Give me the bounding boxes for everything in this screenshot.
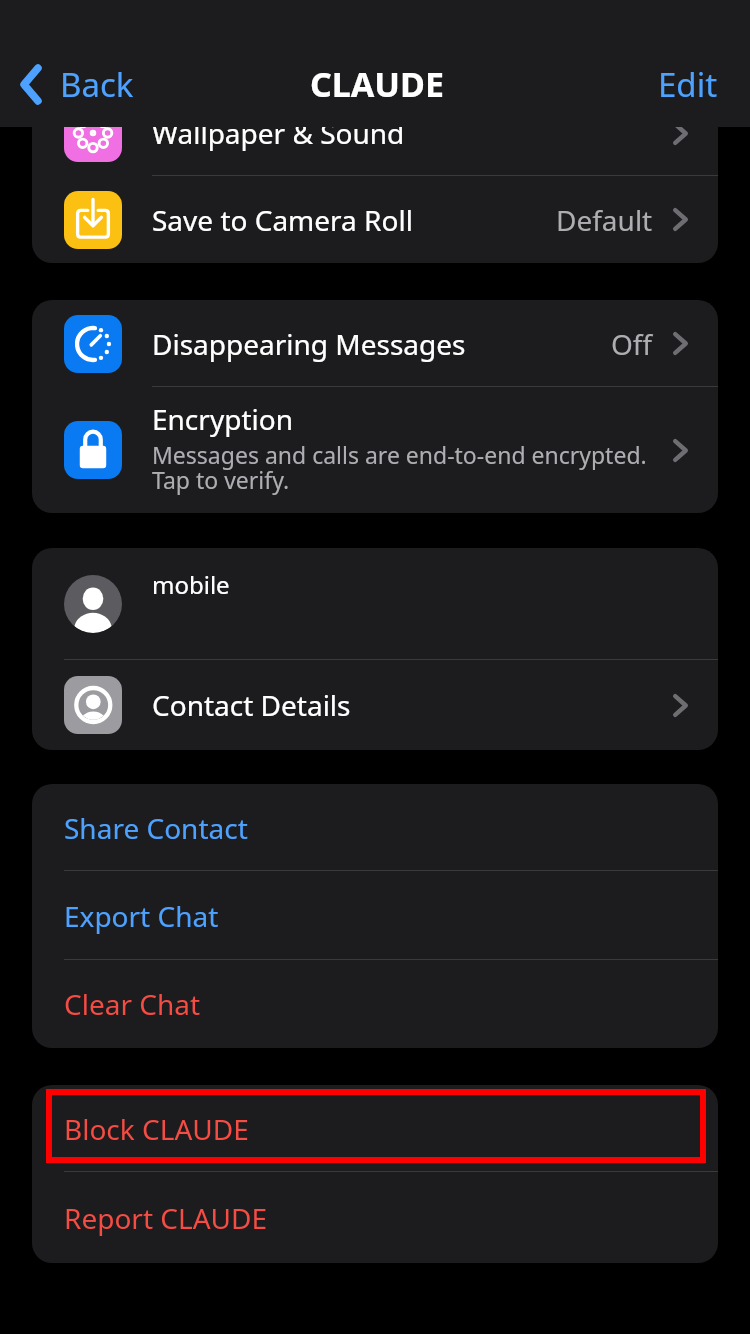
button[interactable]: Wallpaper & Sound [32,90,718,176]
button[interactable]: mobile [32,548,718,660]
staticText: Block CLAUDE [64,1110,249,1148]
button[interactable]: Share Contact [32,784,718,871]
staticText: Encryption [152,400,293,438]
button[interactable]: Block CLAUDE [32,1085,718,1172]
staticText: Clear Chat [64,985,201,1023]
staticText: Report CLAUDE [64,1199,268,1237]
button[interactable]: Report CLAUDE [32,1172,718,1263]
staticText: Share Contact [64,809,248,847]
staticText: CLAUDE [310,61,444,107]
staticText: Wallpaper & Sound [152,114,405,152]
staticText: Save to Camera Roll [152,201,413,239]
staticText: Disappearing Messages [152,325,466,363]
staticText: Export Chat [64,897,219,935]
button[interactable]: Export Chat [32,871,718,960]
button[interactable]: Save to Camera Roll [32,176,718,263]
staticText: Default [556,201,653,239]
button[interactable]: Back [20,50,134,118]
staticText: Contact Details [152,686,351,724]
staticText: mobile [152,568,230,601]
staticText: Messages and calls are end-to-end encryp… [152,439,647,496]
button[interactable]: Edit [658,50,718,118]
button[interactable]: Disappearing Messages [32,300,718,387]
button[interactable]: Encryption [32,387,718,513]
button[interactable]: Clear Chat [32,960,718,1048]
staticText: Off [611,325,653,363]
button[interactable]: Contact Details [32,660,718,750]
staticText: Back [60,62,134,107]
staticText: Edit [658,62,718,107]
